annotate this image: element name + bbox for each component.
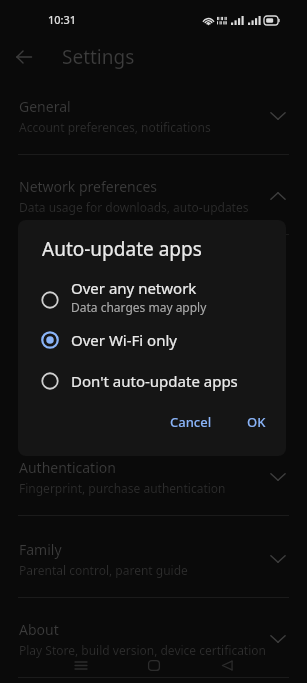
button[interactable]: General bbox=[0, 83, 307, 149]
staticText: Over Wi-Fi only bbox=[71, 330, 177, 350]
staticText: General bbox=[19, 97, 71, 116]
button[interactable]: About bbox=[0, 606, 307, 672]
staticText: OK bbox=[247, 413, 266, 431]
staticText: Network preferences bbox=[19, 177, 158, 196]
staticText: About bbox=[19, 620, 59, 639]
staticText: Cancel bbox=[170, 413, 212, 431]
staticText: Account preferences, notifications bbox=[19, 119, 211, 135]
button[interactable]: Home bbox=[136, 653, 172, 677]
staticText: Don't auto-update apps bbox=[71, 371, 238, 391]
staticText: Parental control, parent guide bbox=[19, 562, 188, 578]
button[interactable] bbox=[36, 362, 286, 400]
button[interactable]: Authentication bbox=[0, 444, 307, 510]
button[interactable] bbox=[36, 321, 286, 359]
button[interactable]: OK bbox=[245, 408, 268, 436]
staticText: Auto-update apps bbox=[42, 236, 202, 262]
staticText: Play Store, build version, device certif… bbox=[19, 642, 266, 658]
staticText: Fingerprint, purchase authentication bbox=[19, 480, 226, 496]
button[interactable]: Network preferences bbox=[0, 163, 307, 229]
staticText: Data charges may apply bbox=[71, 299, 207, 315]
button[interactable]: Back bbox=[209, 653, 245, 677]
staticText: Over any network bbox=[71, 278, 197, 298]
button[interactable]: Back bbox=[8, 41, 40, 73]
button[interactable]: Recents bbox=[63, 653, 99, 677]
staticText: Settings bbox=[62, 44, 135, 70]
staticText: Data usage for downloads, auto-updates bbox=[19, 199, 249, 215]
staticText: Authentication bbox=[19, 458, 116, 477]
staticText: Family bbox=[19, 540, 62, 559]
staticText: 10:31 bbox=[48, 12, 77, 27]
button[interactable]: Cancel bbox=[168, 408, 214, 436]
button[interactable] bbox=[36, 274, 286, 318]
button[interactable]: Family bbox=[0, 526, 307, 592]
